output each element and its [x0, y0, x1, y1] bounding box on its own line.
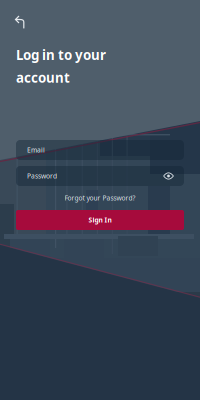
staticText: Forgot your Password?	[64, 194, 135, 202]
staticText: Sign In	[88, 216, 111, 224]
staticText: Email	[27, 146, 45, 154]
staticText: Password	[27, 172, 57, 180]
button[interactable]: Sign In	[16, 210, 184, 230]
staticText: account	[16, 69, 70, 86]
staticText: Log in to your	[16, 46, 106, 64]
button[interactable]: Back	[8, 10, 32, 34]
button[interactable]: Forgot your Password?	[16, 192, 184, 204]
